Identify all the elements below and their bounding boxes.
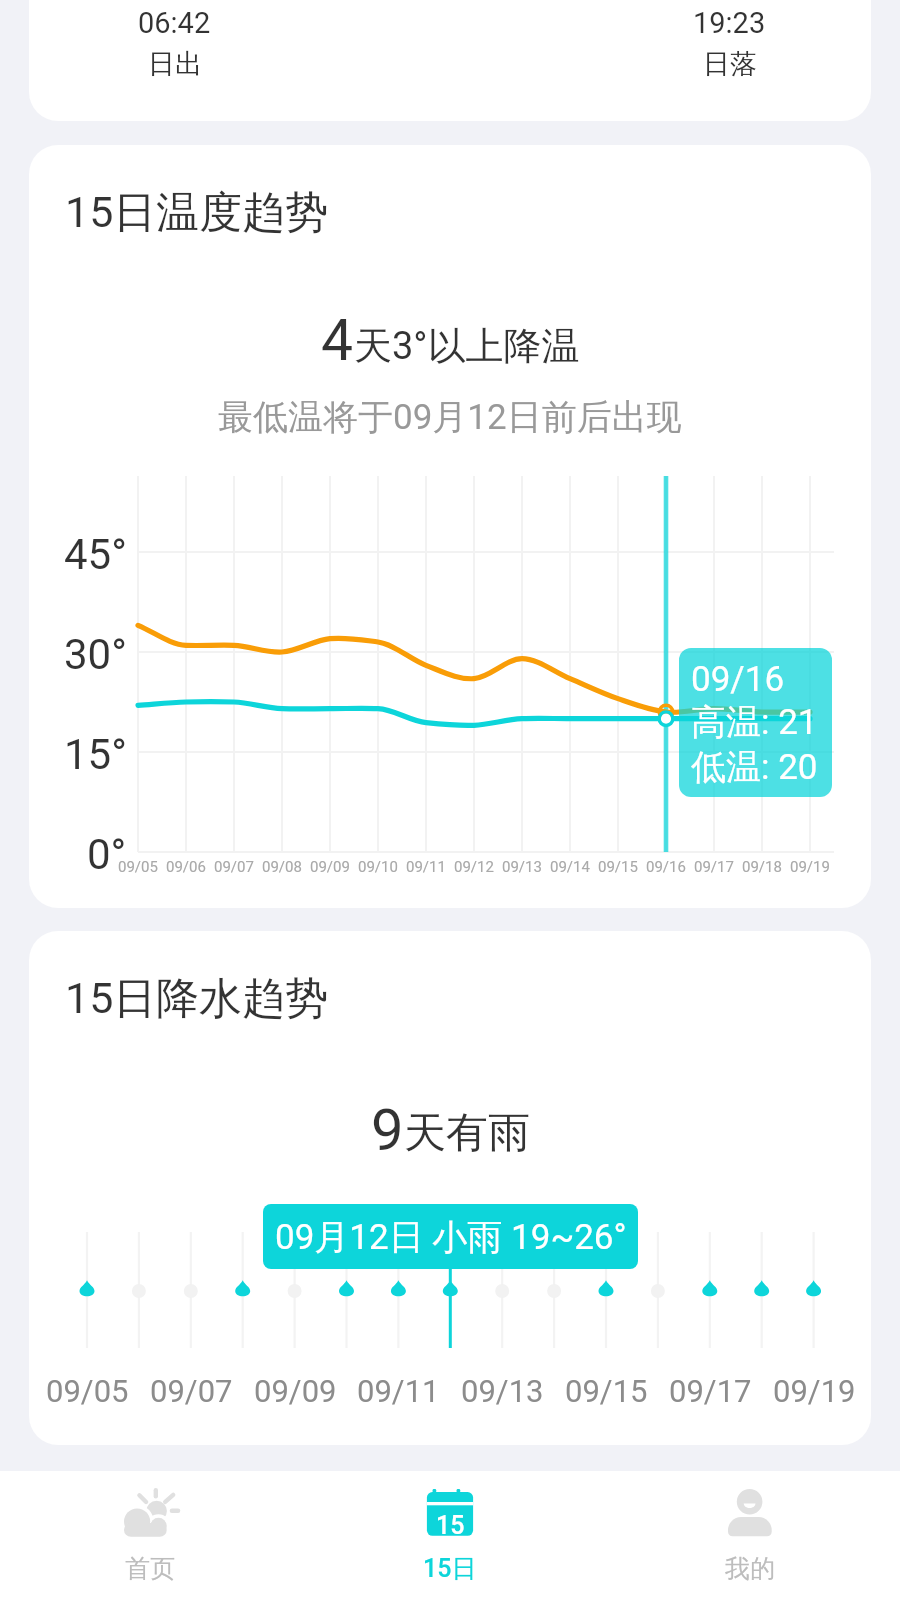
staticText: 15日 (423, 1553, 477, 1584)
staticText: 09/18 (742, 858, 782, 876)
staticText: 天3°以上降温 (354, 322, 580, 370)
staticText: 最低温将于09月12日前后出现 (218, 395, 682, 439)
staticText: 09/07 (214, 858, 254, 876)
staticText: 15 (436, 1511, 465, 1540)
staticText: 09/19 (773, 1373, 856, 1409)
other: 15日 (418, 1483, 482, 1537)
staticText: 09/10 (358, 858, 398, 876)
staticText: 30° (64, 630, 127, 679)
staticText: 09/06 (166, 858, 206, 876)
button[interactable]: 15日 (300, 1471, 600, 1600)
other: 首页 (118, 1483, 182, 1537)
staticText: 09/17 (669, 1373, 752, 1409)
staticText: 09/08 (262, 858, 302, 876)
staticText: 15日温度趋势 (65, 186, 329, 240)
button[interactable]: 我的 (600, 1471, 900, 1600)
other: 我的 (718, 1483, 782, 1537)
staticText: 19:23 (693, 6, 766, 40)
staticText: 09/14 (550, 858, 590, 876)
staticText: 4 (321, 307, 354, 374)
staticText: 我的 (725, 1553, 775, 1584)
staticText: 09/15 (565, 1373, 648, 1409)
staticText: 09/09 (254, 1373, 337, 1409)
staticText: 09/13 (502, 858, 542, 876)
staticText: 09/05 (118, 858, 158, 876)
staticText: 高温: 21 (691, 700, 818, 744)
staticText: 09/11 (357, 1373, 440, 1409)
staticText: 09/09 (310, 858, 350, 876)
staticText: 15日降水趋势 (65, 972, 329, 1026)
staticText: 低温: 20 (691, 745, 818, 789)
staticText: 09/16 (646, 858, 686, 876)
staticText: 09月12日 小雨 19~26° (275, 1215, 627, 1259)
staticText: 09/13 (461, 1373, 544, 1409)
staticText: 09/15 (598, 858, 638, 876)
staticText: 首页 (125, 1553, 175, 1584)
staticText: 45° (64, 530, 127, 579)
staticText: 09/16 (691, 659, 785, 700)
staticText: 天有雨 (404, 1107, 530, 1160)
staticText: 09/11 (406, 858, 446, 876)
staticText: 09/19 (790, 858, 830, 876)
staticText: 09/07 (150, 1373, 233, 1409)
staticText: 15° (64, 730, 127, 779)
button[interactable]: 首页 (0, 1471, 300, 1600)
staticText: 09/17 (694, 858, 734, 876)
staticText: 09/12 (454, 858, 494, 876)
staticText: 06:42 (138, 6, 211, 40)
staticText: 09/05 (46, 1373, 129, 1409)
staticText: 日出 (148, 47, 202, 81)
staticText: 0° (87, 830, 127, 879)
staticText: 9 (371, 1096, 404, 1164)
staticText: 日落 (703, 47, 757, 81)
